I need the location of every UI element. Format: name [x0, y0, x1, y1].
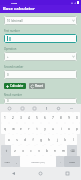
- staticText: q: [4, 127, 6, 131]
- staticText: g: [40, 138, 42, 142]
- button[interactable]: 0: [4, 70, 77, 79]
- button[interactable]: o: [65, 123, 73, 134]
- staticText: 7: [52, 116, 54, 120]
- button[interactable]: ,: [12, 156, 20, 167]
- staticText: ,: [16, 160, 17, 164]
- button[interactable]: c: [27, 145, 35, 156]
- button[interactable]: i: [57, 123, 65, 134]
- button[interactable]: 10 (decimal): [4, 16, 77, 25]
- staticText: 0: [76, 116, 78, 120]
- staticText: z: [14, 149, 16, 153]
- staticText: i: [61, 127, 62, 131]
- staticText: e: [20, 127, 22, 131]
- staticText: Result number: [4, 93, 22, 97]
- button[interactable]: Settings: [56, 106, 61, 111]
- staticText: w: [12, 127, 15, 131]
- button[interactable]: s: [13, 134, 21, 145]
- button[interactable]: q: [1, 123, 9, 134]
- staticText: Second number: [4, 65, 24, 69]
- staticText: d: [24, 138, 26, 142]
- staticText: 6: [44, 116, 46, 120]
- button[interactable]: g: [37, 134, 45, 145]
- button[interactable]: 1: [1, 112, 9, 123]
- button[interactable]: 3: [17, 112, 25, 123]
- staticText: 0: [7, 73, 9, 77]
- staticText: Reset: [35, 84, 43, 88]
- button[interactable]: x: [19, 145, 27, 156]
- button[interactable]: v: [35, 145, 43, 156]
- staticText: 2: [12, 116, 14, 120]
- staticText: Calculate: [10, 84, 24, 88]
- staticText: 9: [68, 116, 70, 120]
- staticText: f: [32, 138, 34, 142]
- staticText: Base calculator: [3, 6, 35, 12]
- button[interactable]: f: [29, 134, 37, 145]
- staticText: 4: [28, 116, 30, 120]
- button[interactable]: j: [53, 134, 61, 145]
- staticText: First number: [4, 29, 20, 33]
- staticText: v: [38, 149, 40, 153]
- button[interactable]: u: [49, 123, 57, 134]
- staticText: k: [64, 138, 66, 142]
- staticText: English (US): [31, 160, 45, 163]
- button[interactable]: +: [4, 52, 77, 61]
- button[interactable]: Recent apps: [64, 170, 71, 177]
- button[interactable]: w: [9, 123, 17, 134]
- staticText: 10 (decimal): [7, 19, 23, 23]
- button[interactable]: a: [5, 134, 13, 145]
- button[interactable]: GIF: [20, 106, 25, 111]
- button[interactable]: ⌫: [67, 145, 77, 156]
- button[interactable]: y: [41, 123, 49, 134]
- button[interactable]: ?123: [1, 156, 12, 167]
- button[interactable]: 0: [4, 98, 77, 104]
- staticText: +: [7, 55, 9, 59]
- staticText: y: [44, 127, 46, 131]
- staticText: n: [54, 149, 56, 153]
- staticText: 8: [60, 116, 62, 120]
- button[interactable]: z: [11, 145, 19, 156]
- button[interactable]: ⇧: [1, 145, 11, 156]
- staticText: ?123: [4, 160, 10, 163]
- staticText: 5: [36, 116, 38, 120]
- button[interactable]: Emoji: [7, 106, 12, 111]
- button[interactable]: 9: [65, 112, 73, 123]
- button[interactable]: 0: [73, 112, 80, 123]
- button[interactable]: r: [25, 123, 33, 134]
- button[interactable]: English (US): [20, 156, 56, 167]
- button[interactable]: Next: [64, 156, 80, 167]
- button[interactable]: m: [59, 145, 67, 156]
- button[interactable]: l: [69, 134, 77, 145]
- button[interactable]: Calculate: [6, 84, 24, 88]
- staticText: ⇧: [5, 149, 8, 152]
- button[interactable]: More: [69, 106, 74, 111]
- button[interactable]: Clipboard: [32, 106, 37, 111]
- staticText: c: [30, 149, 32, 153]
- button[interactable]: e: [17, 123, 25, 134]
- staticText: h: [48, 138, 50, 142]
- button[interactable]: b: [43, 145, 51, 156]
- staticText: 3: [20, 116, 22, 120]
- button[interactable]: Voice input: [44, 106, 49, 111]
- button[interactable]: Reset: [31, 84, 43, 88]
- staticText: u: [52, 127, 54, 131]
- button[interactable]: 7: [49, 112, 57, 123]
- staticText: s: [16, 138, 18, 142]
- button[interactable]: k: [61, 134, 69, 145]
- button[interactable]: [4, 34, 77, 43]
- button[interactable]: 2: [9, 112, 17, 123]
- button[interactable]: 8: [57, 112, 65, 123]
- staticText: b: [46, 149, 48, 153]
- button[interactable]: n: [51, 145, 59, 156]
- button[interactable]: 6: [41, 112, 49, 123]
- button[interactable]: h: [45, 134, 53, 145]
- button[interactable]: 5: [33, 112, 41, 123]
- button[interactable]: d: [21, 134, 29, 145]
- button[interactable]: Home: [37, 170, 44, 177]
- staticText: p: [76, 127, 78, 131]
- staticText: j: [57, 138, 58, 142]
- button[interactable]: 4: [25, 112, 33, 123]
- button[interactable]: p: [73, 123, 80, 134]
- button[interactable]: Back: [10, 170, 17, 177]
- button[interactable]: t: [33, 123, 41, 134]
